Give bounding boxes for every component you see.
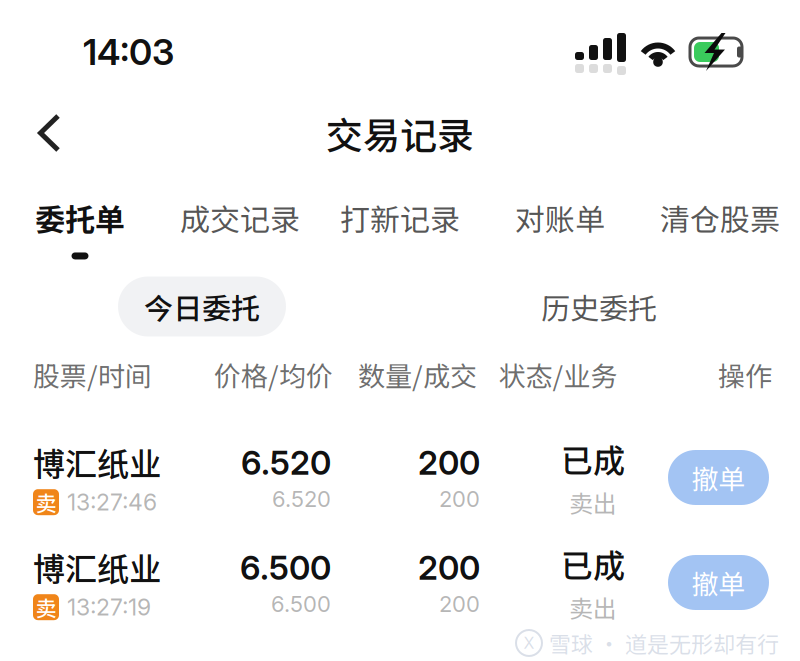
staticText: 6.500	[271, 591, 331, 617]
button[interactable]: 撤单	[668, 555, 769, 610]
staticText: 6.520	[272, 486, 331, 512]
staticText: 雪球 · 道是无形却有行	[549, 627, 779, 659]
staticText: 卖	[35, 487, 56, 517]
staticText: 委托单	[35, 196, 125, 239]
staticText: 成交记录	[180, 196, 300, 239]
staticText: 打新记录	[340, 196, 460, 239]
staticText: 14:03	[83, 30, 174, 74]
staticText: 对账单	[515, 196, 605, 239]
staticText: 历史委托	[541, 285, 657, 327]
staticText: 6.520	[241, 443, 331, 483]
staticText: 数量/成交	[358, 355, 477, 394]
button[interactable]: 成交记录	[160, 162, 320, 263]
staticText: 博汇纸业	[33, 439, 161, 485]
staticText: 200	[418, 443, 480, 483]
staticText: 卖出	[569, 590, 617, 625]
button[interactable]: 返回	[17, 101, 82, 165]
staticText: 撤单	[691, 458, 745, 497]
staticText: 股票/时间	[33, 355, 152, 394]
staticText: 今日委托	[144, 285, 260, 327]
button[interactable]: 打新记录	[320, 162, 480, 263]
button[interactable]: 对账单	[480, 162, 640, 263]
staticText: 操作	[718, 355, 772, 394]
button[interactable]: 委托单	[0, 162, 160, 263]
staticText: 卖出	[569, 485, 617, 520]
staticText: X	[523, 633, 534, 653]
staticText: 6.500	[240, 548, 331, 588]
button[interactable]: 清仓股票	[640, 162, 800, 263]
button[interactable]: 撤单	[668, 450, 769, 505]
staticText: 博汇纸业	[33, 544, 161, 590]
button[interactable]: 今日委托	[118, 276, 286, 336]
staticText: 状态/业务	[498, 355, 617, 394]
staticText: 200	[418, 548, 480, 588]
staticText: 交易记录	[326, 106, 474, 160]
staticText: 清仓股票	[660, 196, 780, 239]
staticText: 13:27:19	[67, 593, 151, 621]
staticText: 13:27:46	[67, 488, 157, 516]
staticText: 200	[439, 591, 480, 617]
staticText: 卖	[35, 592, 56, 622]
staticText: 200	[439, 486, 480, 512]
button[interactable]: 历史委托	[515, 275, 683, 337]
staticText: 已成	[561, 540, 625, 587]
staticText: 已成	[561, 435, 625, 482]
staticText: 撤单	[691, 563, 745, 602]
staticText: 价格/均价	[214, 355, 333, 394]
